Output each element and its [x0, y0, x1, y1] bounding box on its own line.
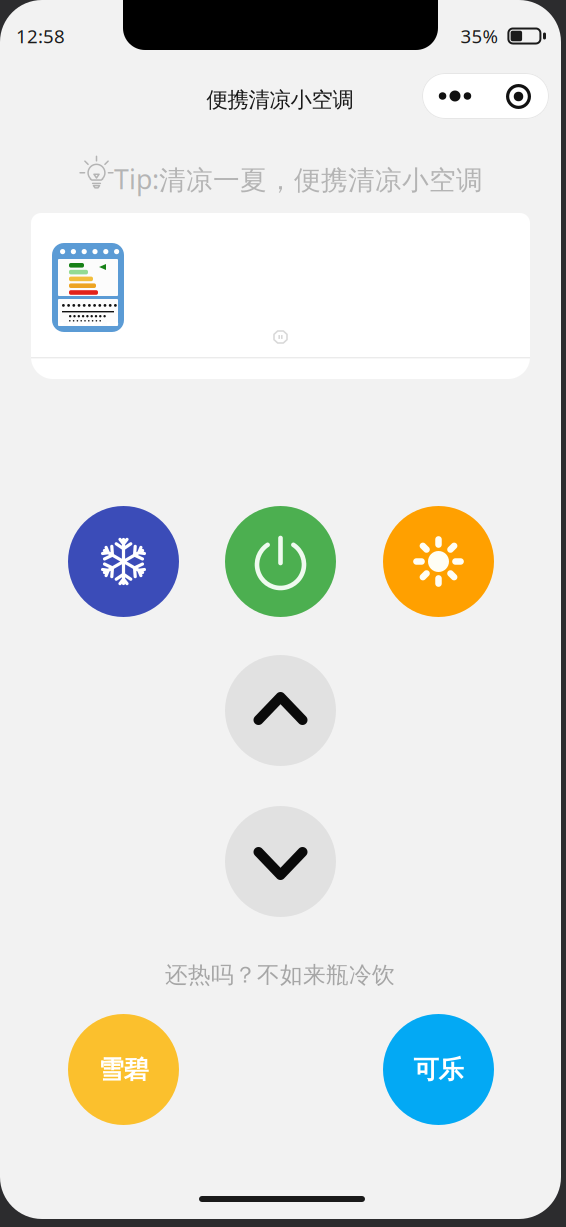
button[interactable]: 雪碧 [68, 1014, 179, 1125]
staticText: 12:58 [16, 24, 65, 48]
button[interactable]: Heat mode [383, 506, 494, 617]
staticText: 便携清凉小空调 [206, 87, 353, 113]
button[interactable]: More options [422, 73, 549, 119]
staticText: 35% [460, 24, 498, 48]
button[interactable]: 可乐 [383, 1014, 494, 1125]
staticText: 还热吗？不如来瓶冷饮 [165, 961, 395, 989]
button[interactable]: Increase temperature [225, 655, 336, 766]
button[interactable]: Decrease temperature [225, 806, 336, 917]
button[interactable]: Power [225, 506, 336, 617]
staticText: Tip:清凉一夏，便携清凉小空调 [114, 161, 483, 197]
staticText: 可乐 [413, 1054, 463, 1085]
staticText: 雪碧 [98, 1054, 148, 1085]
button[interactable]: Cool mode [68, 506, 179, 617]
